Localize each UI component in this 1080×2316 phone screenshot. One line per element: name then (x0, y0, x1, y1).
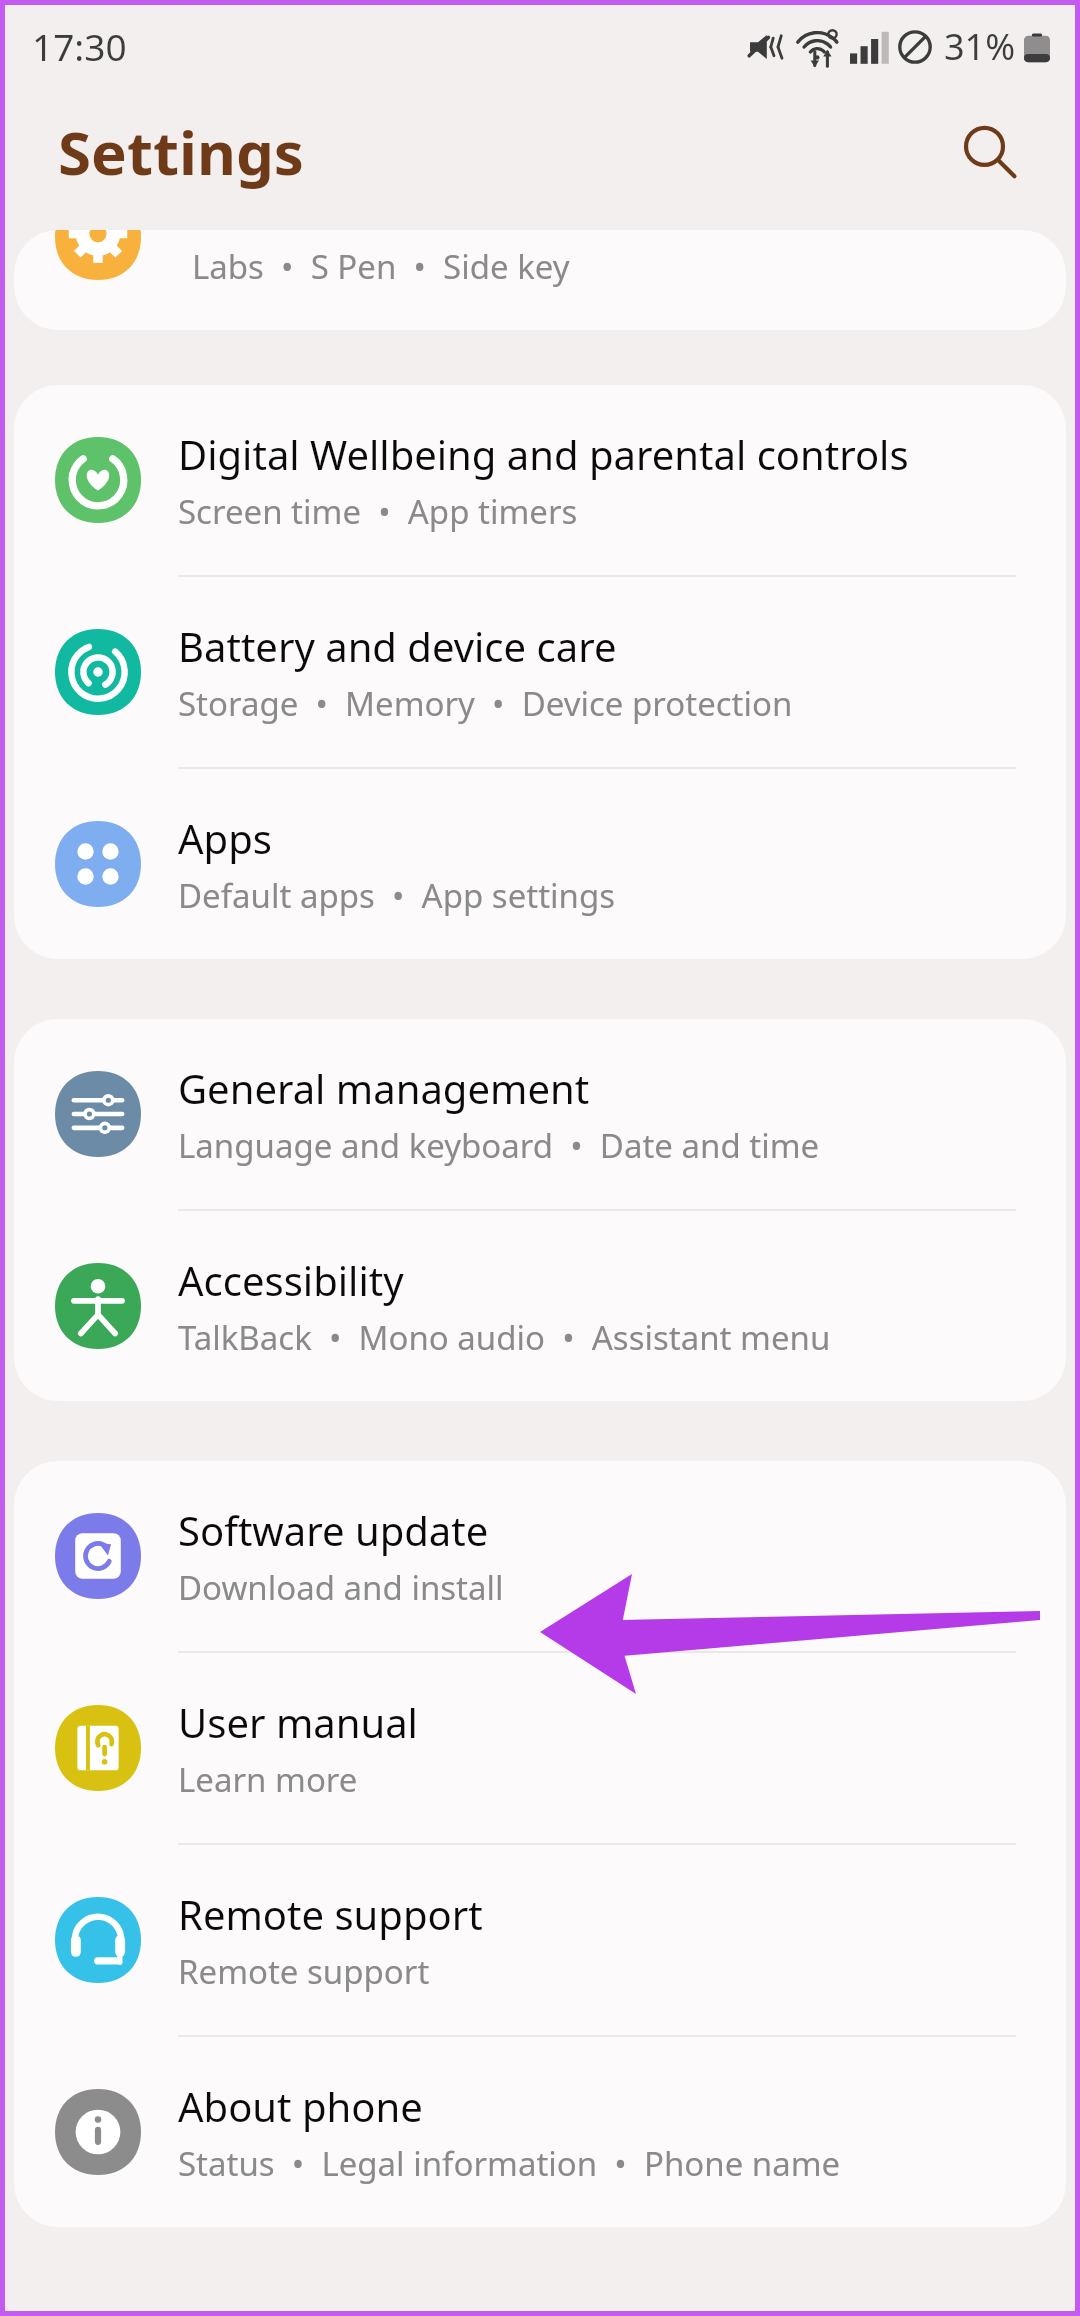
button[interactable]: User manual (14, 1653, 1066, 1843)
button[interactable]: Software update (14, 1461, 1066, 1651)
button[interactable]: Remote support (14, 1845, 1066, 2035)
button[interactable]: Battery and device care (14, 577, 1066, 767)
staticText: Remote support (178, 1949, 430, 1994)
staticText: Default apps • App settings (178, 873, 616, 918)
staticText: Labs • S Pen • Side key (192, 244, 570, 289)
staticText: General management (178, 1061, 590, 1115)
button[interactable]: Digital Wellbeing and parental controls (14, 385, 1066, 575)
button[interactable]: About phone (14, 2037, 1066, 2227)
staticText: Accessibility (178, 1253, 404, 1307)
staticText: About phone (178, 2079, 423, 2133)
button[interactable]: Apps (14, 769, 1066, 959)
staticText: Screen time • App timers (178, 489, 578, 534)
staticText: Settings (58, 111, 304, 193)
button[interactable]: Search (946, 109, 1032, 195)
staticText: TalkBack • Mono audio • Assistant menu (178, 1315, 831, 1360)
staticText: Battery and device care (178, 619, 617, 673)
staticText: 17:30 (32, 21, 127, 71)
staticText: Language and keyboard • Date and time (178, 1123, 820, 1168)
staticText: Remote support (178, 1887, 483, 1941)
staticText: Software update (178, 1503, 489, 1557)
staticText: Download and install (178, 1565, 504, 1610)
button[interactable]: General management (14, 1019, 1066, 1209)
button[interactable]: Labs • S Pen • Side key (14, 230, 1066, 330)
button[interactable]: Accessibility (14, 1211, 1066, 1401)
staticText: Apps (178, 811, 272, 865)
staticText: 31% (944, 22, 1016, 71)
staticText: Status • Legal information • Phone name (178, 2141, 841, 2186)
staticText: Learn more (178, 1757, 358, 1802)
staticText: User manual (178, 1695, 418, 1749)
staticText: Storage • Memory • Device protection (178, 681, 793, 726)
staticText: Digital Wellbeing and parental controls (178, 427, 909, 481)
